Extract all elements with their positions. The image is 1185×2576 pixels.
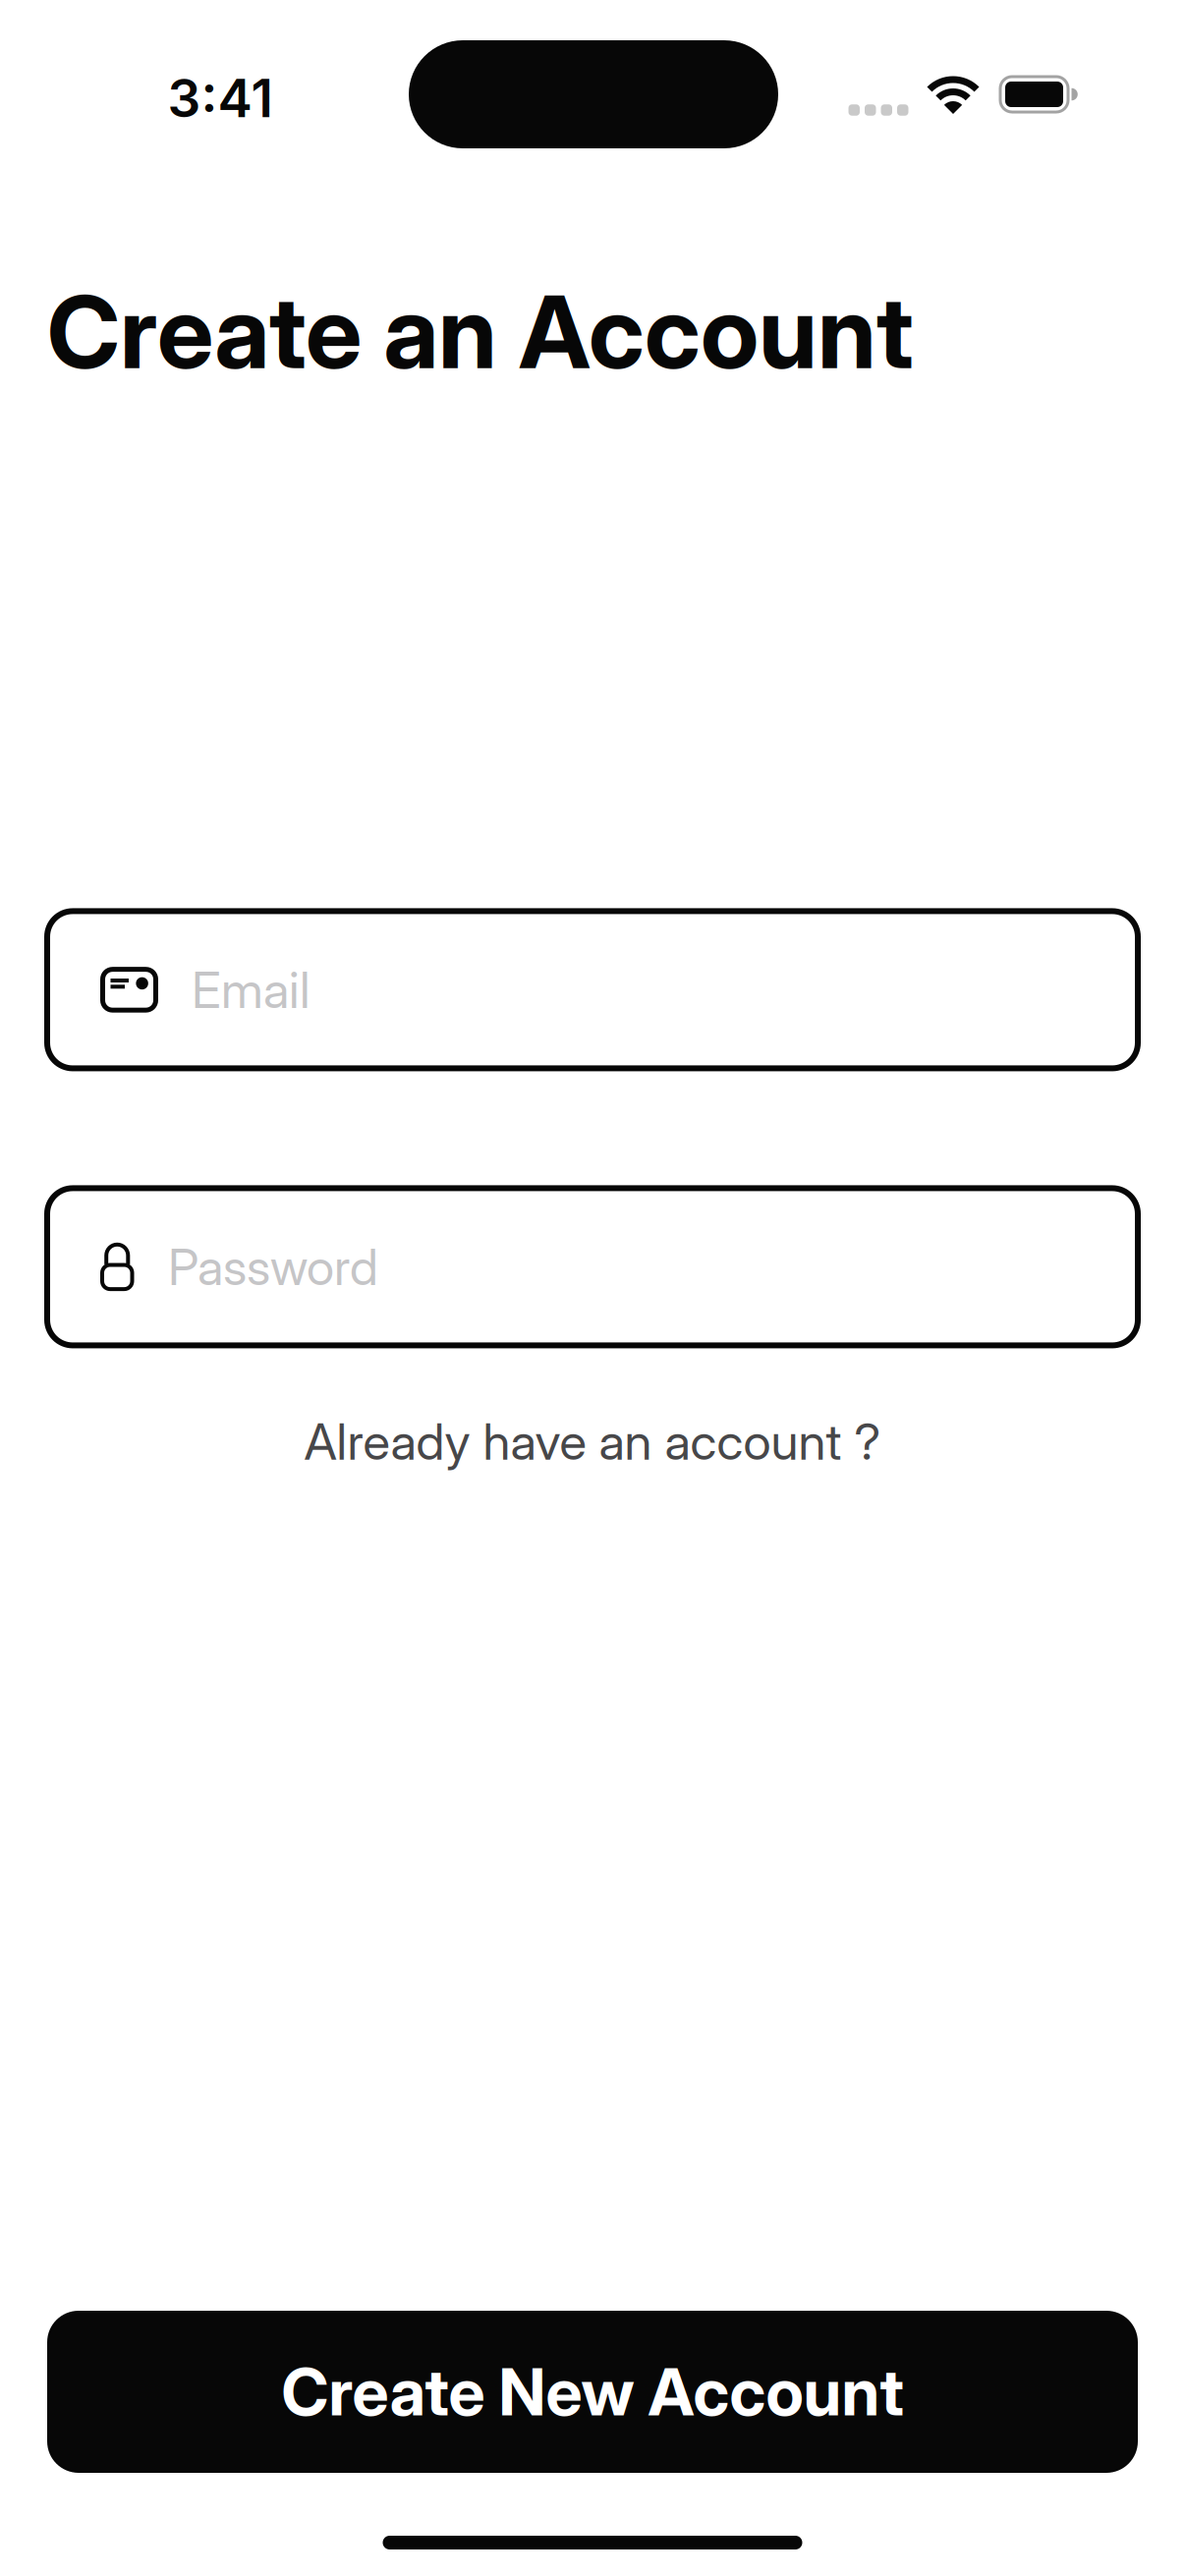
button[interactable]: Password xyxy=(47,1188,1138,1345)
staticText: Already have an account ? xyxy=(304,1411,881,1472)
staticText: Create New Account xyxy=(282,2353,903,2431)
button[interactable]: Email xyxy=(47,911,1138,1068)
staticText: Email xyxy=(192,959,310,1020)
staticText: Create an Account xyxy=(47,271,914,392)
button[interactable]: Create New Account xyxy=(47,2311,1138,2473)
staticText: 3:41 xyxy=(168,67,273,130)
button[interactable]: Already have an account ? xyxy=(304,1411,881,1472)
staticText: Password xyxy=(168,1237,378,1297)
